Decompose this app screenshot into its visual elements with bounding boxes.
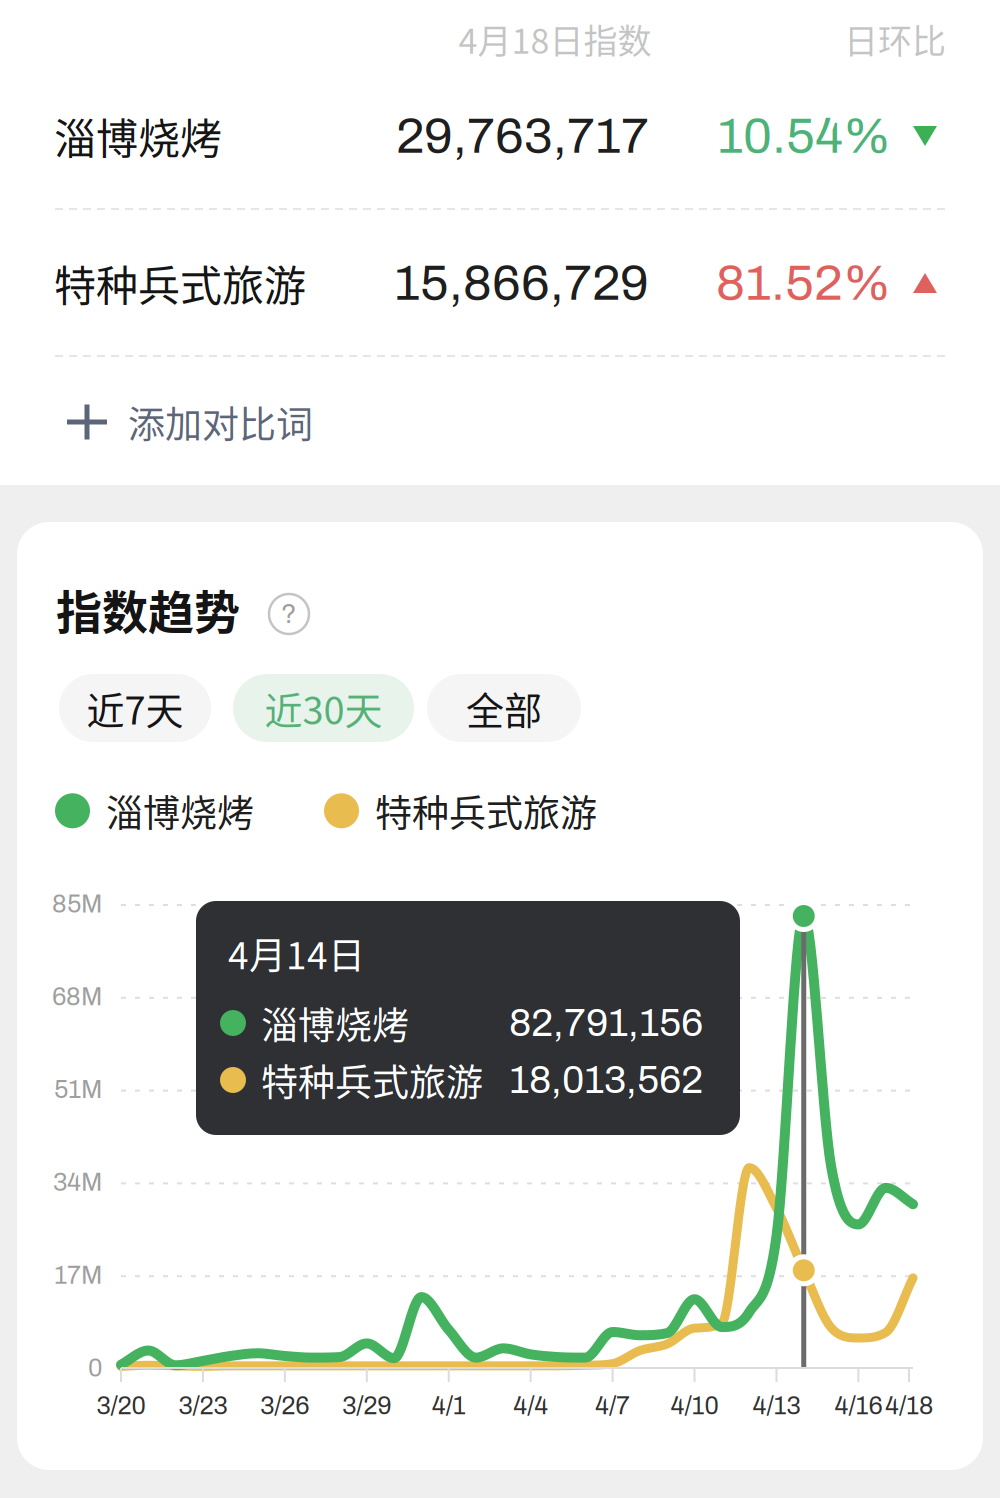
staticText: 81.52% bbox=[716, 255, 891, 310]
staticText: 29,763,717 bbox=[396, 109, 649, 163]
staticText: 淄博烧烤 bbox=[54, 106, 222, 166]
staticText: 日环比 bbox=[844, 14, 946, 64]
staticText: 4月14日 bbox=[228, 926, 365, 980]
staticText: 15,866,729 bbox=[394, 256, 649, 310]
button[interactable]: 近7天 bbox=[59, 674, 211, 742]
staticText: 3/23 bbox=[178, 1392, 227, 1420]
staticText: 34M bbox=[53, 1169, 102, 1196]
staticText: 4/18 bbox=[885, 1392, 933, 1420]
staticText: 3/20 bbox=[96, 1392, 145, 1420]
staticText: 4月18日指数 bbox=[458, 14, 651, 64]
staticText: 82,791,156 bbox=[509, 1002, 703, 1044]
staticText: 特种兵式旅游 bbox=[375, 784, 597, 838]
staticText: 10.54% bbox=[717, 108, 891, 163]
staticText: 特种兵式旅游 bbox=[261, 1053, 483, 1107]
staticText: 51M bbox=[54, 1076, 102, 1103]
staticText: 4/16 bbox=[834, 1392, 882, 1420]
staticText: 4/10 bbox=[670, 1392, 718, 1420]
staticText: 4/4 bbox=[513, 1392, 548, 1420]
staticText: 17M bbox=[54, 1261, 102, 1289]
staticText: 3/26 bbox=[260, 1392, 309, 1420]
staticText: 85M bbox=[52, 890, 102, 918]
staticText: 18,013,562 bbox=[509, 1059, 703, 1101]
button[interactable]: 添加对比词 bbox=[0, 363, 380, 481]
staticText: 特种兵式旅游 bbox=[54, 253, 306, 313]
staticText: ? bbox=[281, 599, 297, 629]
staticText: 近7天 bbox=[86, 680, 183, 735]
staticText: 3/29 bbox=[342, 1392, 391, 1420]
staticText: 4/1 bbox=[432, 1392, 466, 1420]
staticText: 0 bbox=[88, 1354, 102, 1382]
button[interactable]: 近30天 bbox=[233, 674, 414, 742]
staticText: 指数趋势 bbox=[56, 576, 240, 642]
staticText: 添加对比词 bbox=[128, 395, 313, 449]
staticText: 68M bbox=[52, 983, 102, 1010]
staticText: 4/7 bbox=[595, 1392, 630, 1420]
staticText: 淄博烧烤 bbox=[261, 996, 409, 1050]
button[interactable]: 全部 bbox=[427, 674, 581, 742]
staticText: 全部 bbox=[466, 680, 542, 735]
staticText: 淄博烧烤 bbox=[106, 784, 254, 838]
staticText: 近30天 bbox=[264, 680, 382, 735]
staticText: 4/13 bbox=[752, 1392, 800, 1420]
button[interactable]: About index trend bbox=[269, 594, 309, 634]
